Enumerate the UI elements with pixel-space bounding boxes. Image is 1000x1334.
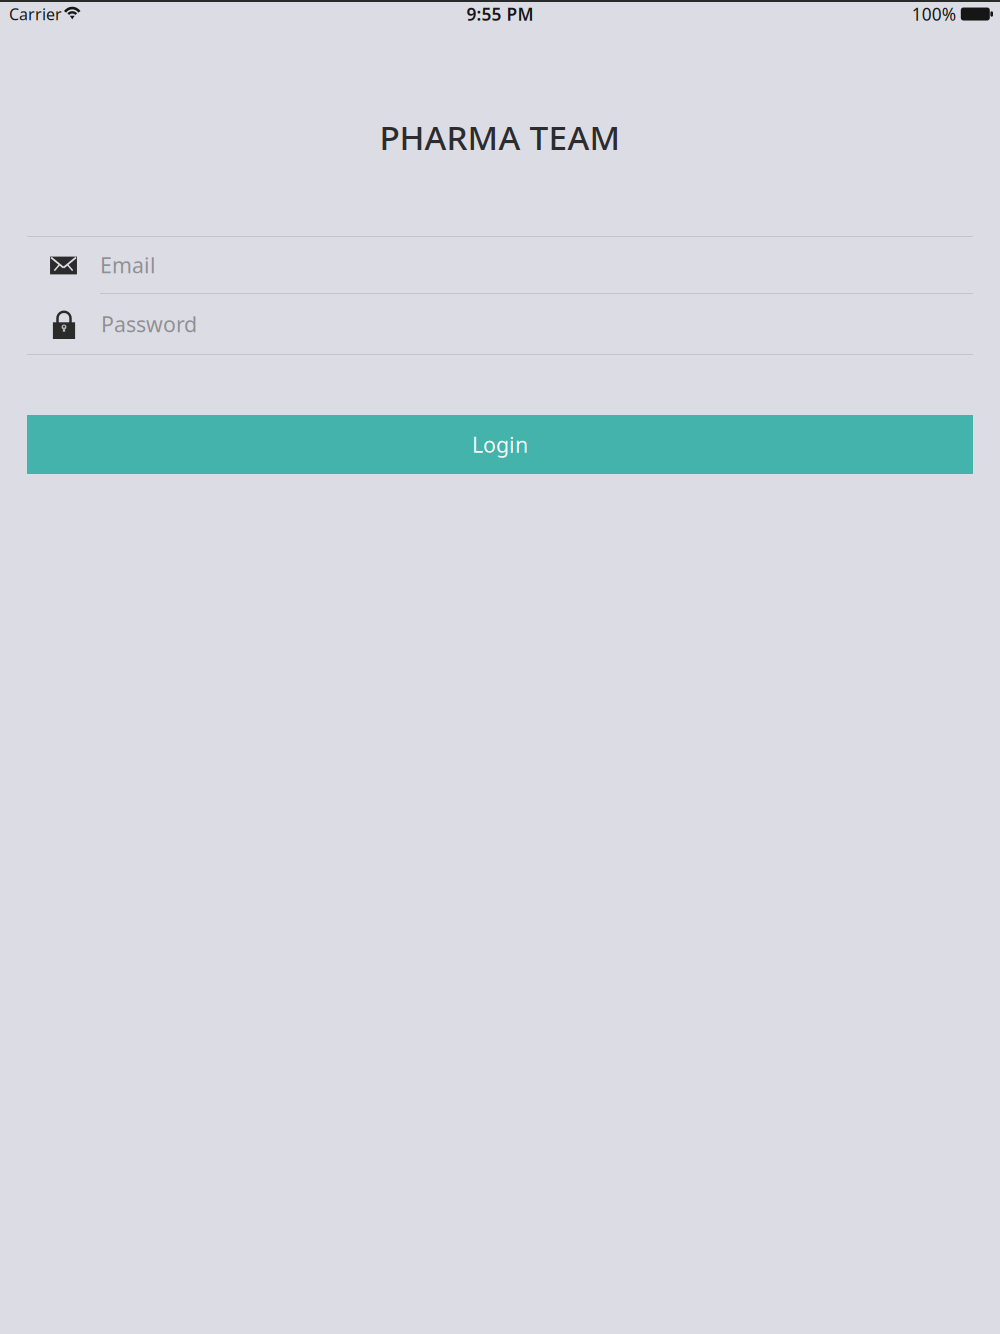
staticText: Email (100, 251, 156, 279)
button[interactable]: Login (27, 415, 973, 474)
staticText: 100% (912, 2, 956, 25)
staticText: 9:55 PM (466, 2, 533, 25)
staticText: Carrier (9, 3, 62, 25)
staticText: Login (472, 430, 528, 459)
staticText: Password (101, 310, 197, 338)
button[interactable]: Password (27, 294, 973, 354)
button[interactable]: Email (27, 237, 973, 294)
staticText: PHARMA TEAM (379, 115, 620, 159)
